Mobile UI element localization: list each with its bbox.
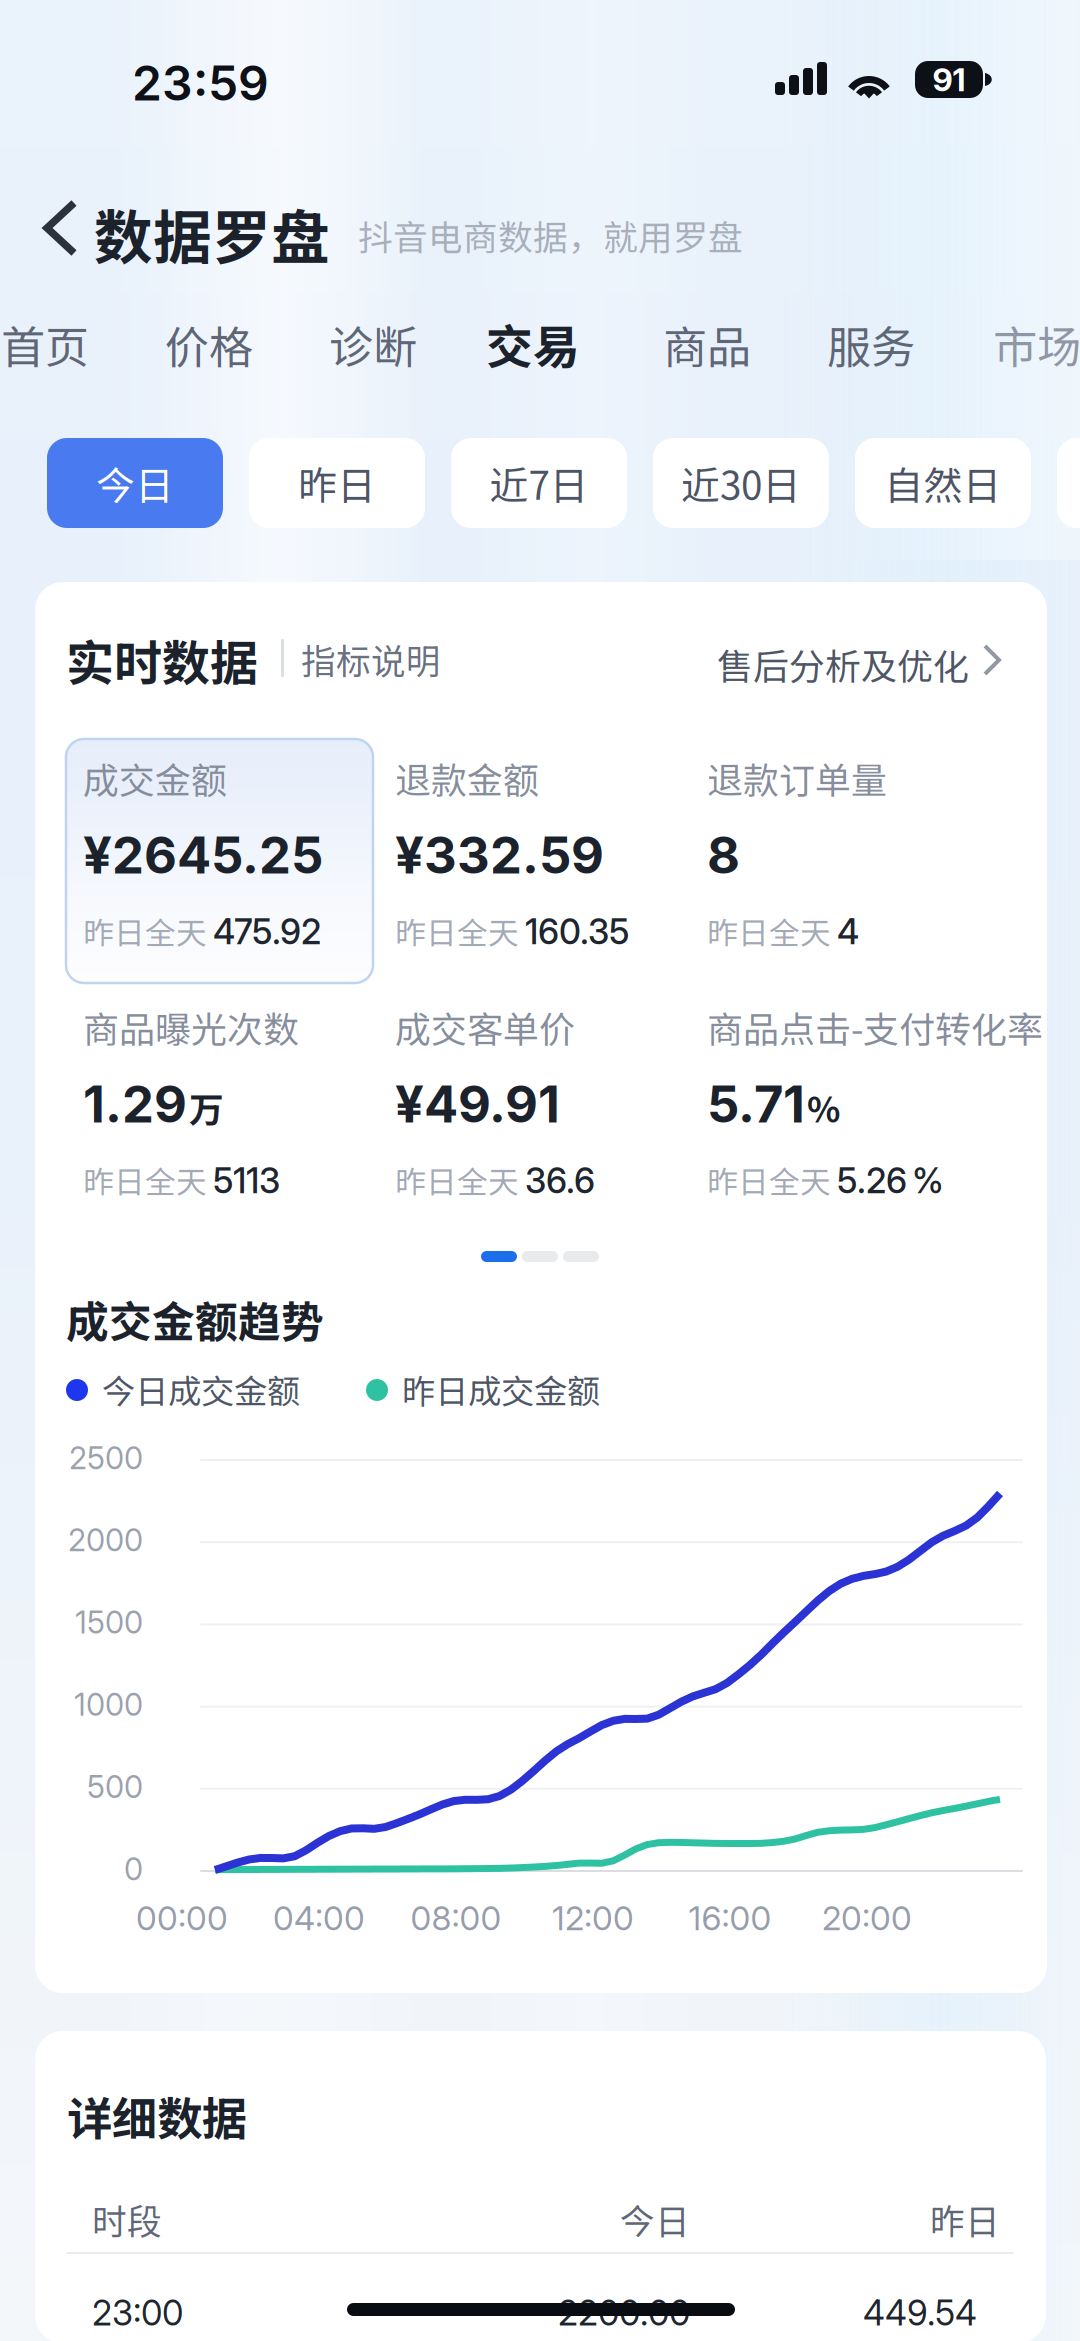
staticText: 04:00 [273, 1898, 365, 1938]
staticText: 昨日 [298, 455, 376, 511]
button[interactable]: 昨日 [249, 438, 425, 528]
staticText: 2000 [68, 1522, 143, 1559]
staticText: 4 [837, 911, 859, 953]
button[interactable]: 市场 [993, 296, 1080, 392]
staticText: 抖音电商数据，就用罗盘 [358, 210, 743, 260]
staticText: 万 [189, 1082, 224, 1132]
staticText: 近7日 [489, 455, 588, 511]
staticText: 退款金额 [395, 752, 539, 804]
button[interactable]: 近7日 [451, 438, 627, 528]
button[interactable]: 售后分析及优化 [717, 630, 1017, 688]
staticText: 商品点击-支付转化率 [707, 1001, 1043, 1053]
staticText: 0 [124, 1850, 143, 1887]
staticText: 诊断 [329, 312, 417, 376]
staticText: 今日 [620, 2194, 690, 2244]
staticText: 1.29 [83, 1073, 187, 1135]
staticText: 近30日 [681, 455, 801, 511]
staticText: 00:00 [136, 1898, 228, 1938]
staticText: ¥2645.25 [83, 824, 323, 886]
staticText: % [807, 1082, 840, 1132]
staticText: 退款订单量 [707, 752, 887, 804]
staticText: 475.92 [213, 911, 321, 953]
staticText: 时段 [92, 2194, 162, 2244]
staticText: 5.26 % [837, 1160, 944, 1202]
staticText: 160.35 [525, 911, 629, 953]
staticText: 今日 [96, 455, 174, 511]
staticText: 交易 [486, 310, 580, 378]
button[interactable]: 交易 [478, 296, 588, 392]
staticText: 昨日全天 [83, 909, 207, 953]
staticText: 昨日全天 [395, 909, 519, 953]
staticText: 449.54 [863, 2292, 977, 2334]
staticText: 数据罗盘 [94, 191, 330, 276]
staticText: 实时数据 [66, 625, 258, 694]
button[interactable]: 价格 [154, 296, 264, 392]
staticText: 8 [707, 824, 740, 886]
staticText: 成交金额 [83, 752, 227, 804]
staticText: 昨日全天 [395, 1158, 519, 1202]
staticText: 首页 [1, 312, 89, 376]
staticText: 5.71 [707, 1073, 805, 1135]
staticText: 详细数据 [67, 2083, 247, 2149]
staticText: 成交客单价 [395, 1001, 575, 1053]
button[interactable]: 指标说明 [301, 630, 461, 688]
staticText: 指标说明 [301, 634, 441, 684]
staticText: 昨日 [930, 2194, 1000, 2244]
staticText: 成交金额趋势 [66, 1288, 324, 1350]
staticText: 91 [932, 60, 965, 99]
button[interactable]: 首页 [0, 296, 100, 392]
staticText: 16:00 [688, 1898, 771, 1938]
staticText: 市场 [993, 312, 1080, 376]
button[interactable]: 自定义 [1057, 438, 1080, 528]
staticText: 商品曝光次数 [83, 1001, 299, 1053]
staticText: 20:00 [822, 1898, 912, 1938]
staticText: 2500 [69, 1439, 143, 1476]
button[interactable]: 服务 [816, 296, 926, 392]
staticText: 自然日 [884, 455, 1001, 511]
button[interactable]: 诊断 [318, 296, 428, 392]
button[interactable]: 今日 [47, 438, 223, 528]
staticText: 今日成交金额 [102, 1365, 300, 1413]
staticText: ¥49.91 [395, 1073, 560, 1135]
staticText: 价格 [165, 312, 253, 376]
staticText: 23:59 [132, 54, 269, 112]
staticText: 36.6 [525, 1160, 595, 1202]
staticText: 1000 [74, 1686, 143, 1723]
staticText: 昨日全天 [707, 909, 831, 953]
staticText: 售后分析及优化 [717, 638, 969, 690]
staticText: 12:00 [552, 1898, 634, 1938]
staticText: 昨日成交金额 [402, 1365, 600, 1413]
button[interactable]: 自然日 [855, 438, 1031, 528]
button[interactable]: Back [22, 190, 112, 266]
staticText: 昨日全天 [707, 1158, 831, 1202]
staticText: 2200.00 [558, 2292, 690, 2334]
staticText: ¥332.59 [395, 824, 604, 886]
staticText: 23:00 [92, 2292, 183, 2334]
staticText: 昨日全天 [83, 1158, 207, 1202]
staticText: 1500 [75, 1604, 143, 1641]
staticText: 商品 [663, 312, 751, 376]
button[interactable]: 商品 [652, 296, 762, 392]
staticText: 服务 [827, 312, 915, 376]
staticText: 500 [87, 1768, 143, 1805]
staticText: 08:00 [410, 1898, 501, 1938]
staticText: 5113 [213, 1160, 280, 1202]
button[interactable]: 近30日 [653, 438, 829, 528]
